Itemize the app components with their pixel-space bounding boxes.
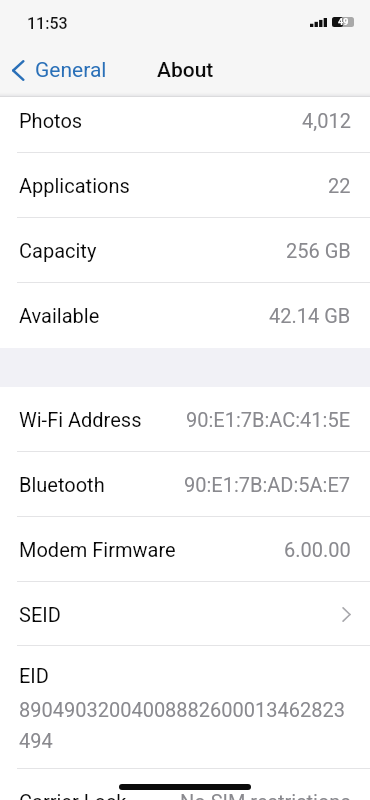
staticText: No SIM restrictions	[180, 790, 351, 800]
button[interactable]: Available	[0, 283, 370, 348]
staticText: 89049032004008882600013462823 494	[19, 698, 345, 752]
button[interactable]: General	[0, 50, 113, 90]
staticText: Wi-Fi Address	[19, 408, 142, 431]
button[interactable]: SEID	[0, 582, 370, 646]
staticText: About	[157, 58, 214, 83]
staticText: 256 GB	[286, 239, 351, 262]
button[interactable]: Bluetooth	[0, 452, 370, 517]
staticText: Modem Firmware	[19, 538, 176, 561]
staticText: SEID	[19, 603, 61, 626]
other: Open SEID	[342, 607, 351, 622]
staticText: General	[35, 58, 107, 83]
button[interactable]: Capacity	[0, 218, 370, 283]
button[interactable]: Photos	[0, 88, 370, 153]
other: Cellular signal	[310, 18, 327, 27]
staticText: Photos	[19, 109, 83, 132]
other: Battery 49 percent	[332, 17, 354, 27]
button[interactable]: Modem Firmware	[0, 517, 370, 582]
staticText: 90:E1:7B:AD:5A:E7	[184, 473, 351, 496]
staticText: 6.00.00	[284, 538, 351, 561]
button[interactable]: Applications	[0, 153, 370, 218]
staticText: Bluetooth	[19, 473, 105, 496]
staticText: 11:53	[27, 14, 68, 33]
staticText: Available	[19, 304, 100, 327]
staticText: 4,012	[302, 109, 351, 132]
button[interactable]: EID	[0, 646, 370, 769]
staticText: EID	[19, 664, 49, 687]
staticText: 42.14 GB	[269, 304, 351, 327]
staticText: 22	[328, 174, 351, 197]
staticText: Capacity	[19, 239, 97, 262]
staticText: 49	[338, 17, 349, 27]
button[interactable]: Carrier Lock	[0, 769, 370, 800]
staticText: 90:E1:7B:AC:41:5E	[186, 408, 351, 431]
staticText: Applications	[19, 174, 130, 197]
button[interactable]: Wi-Fi Address	[0, 387, 370, 452]
staticText: Carrier Lock	[19, 790, 127, 800]
